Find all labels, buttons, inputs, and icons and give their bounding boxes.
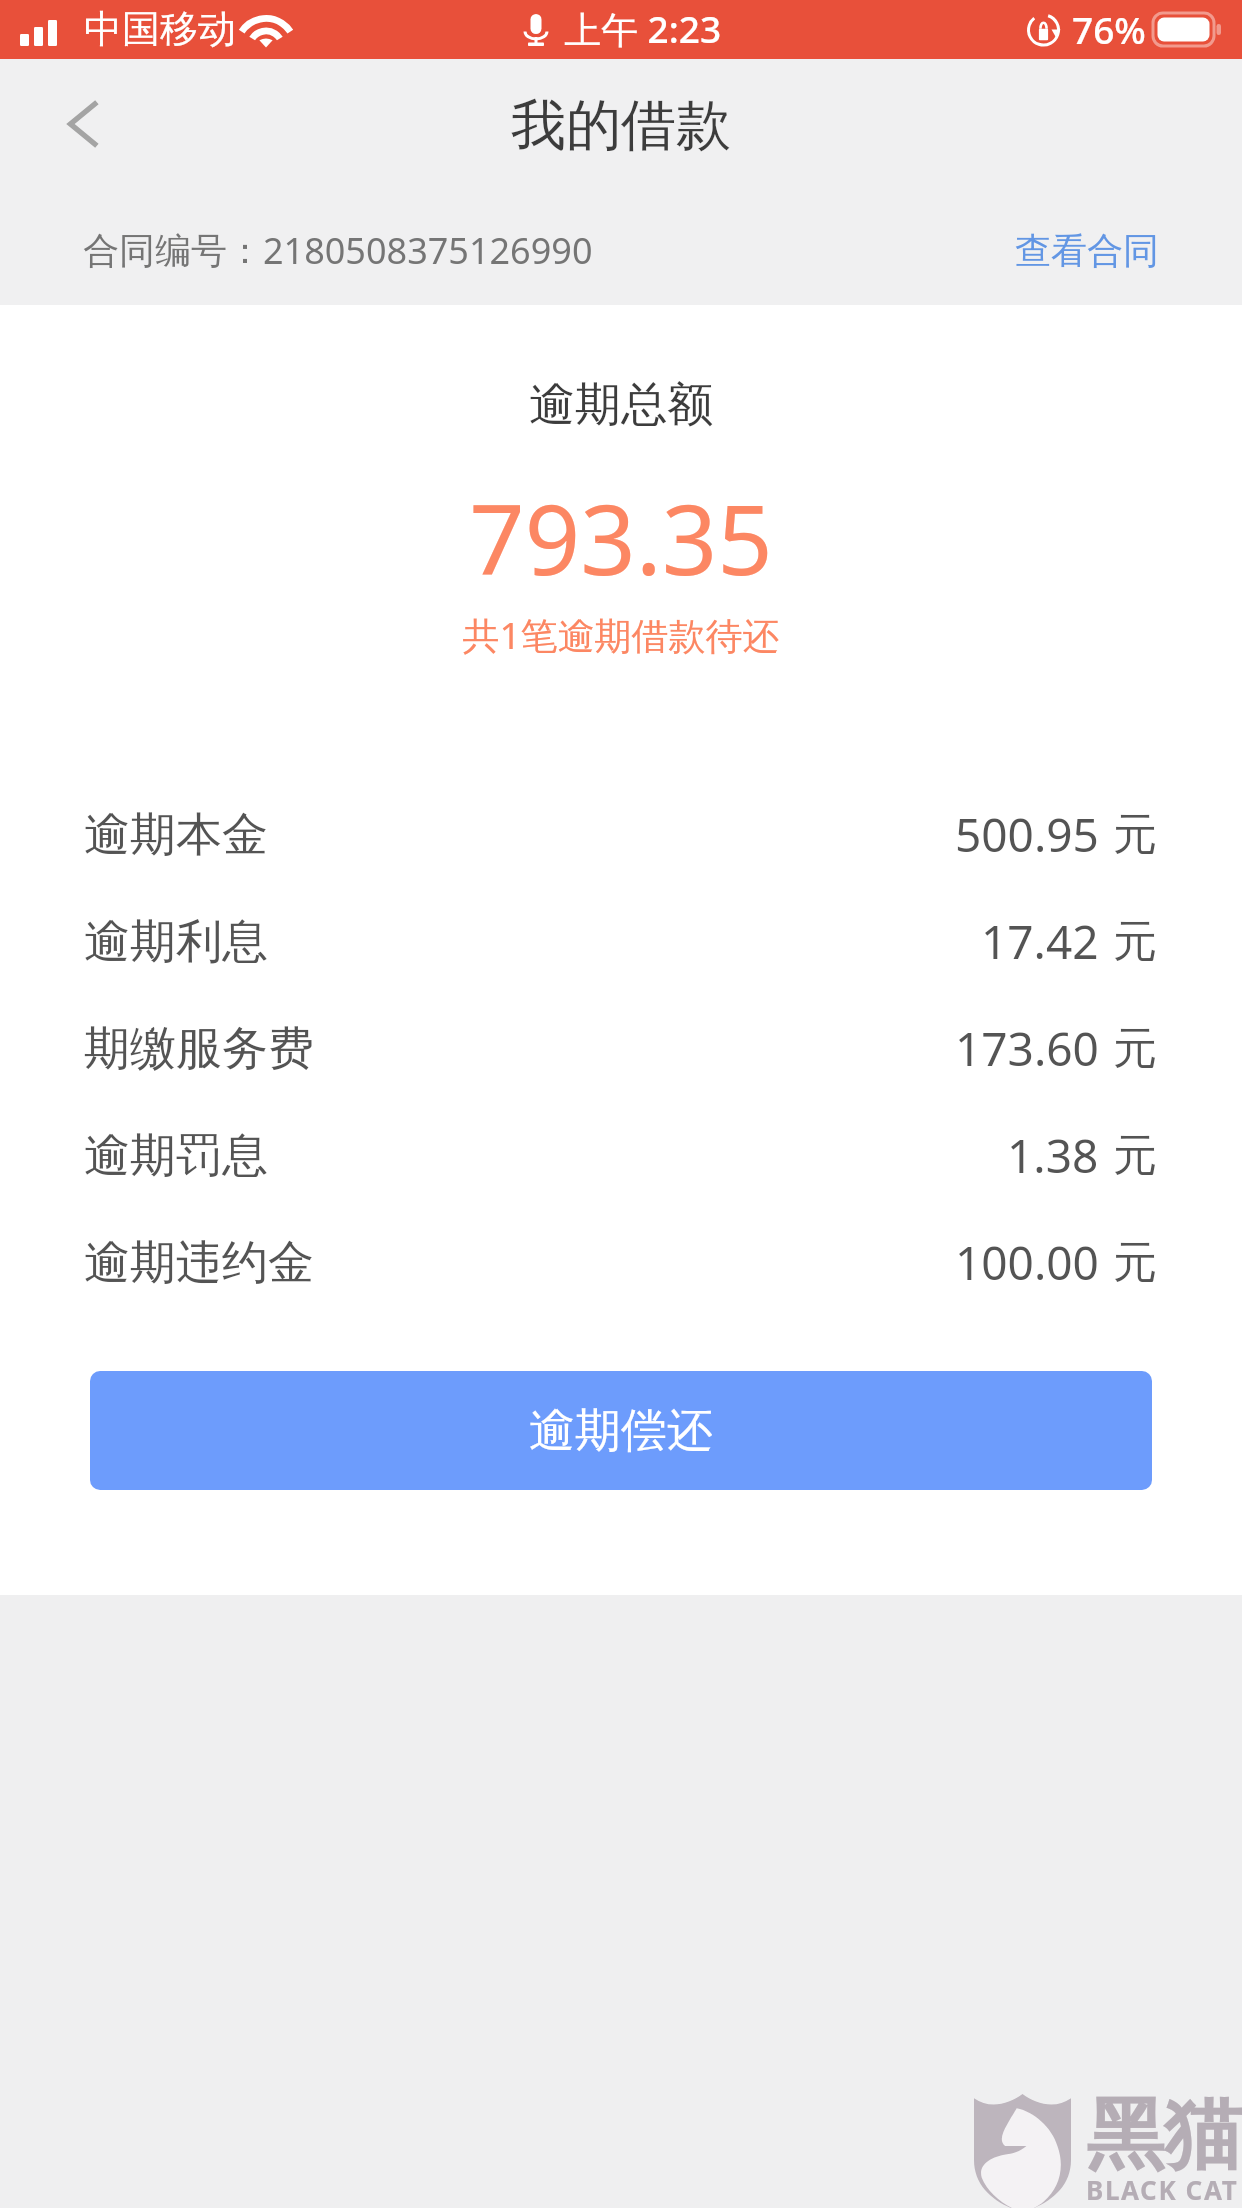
staticText: 元 (1113, 807, 1157, 862)
staticText: 173.60 (955, 1017, 1099, 1080)
staticText: 我的借款 (511, 91, 731, 160)
staticText: 共1笔逾期借款待还 (0, 609, 1242, 660)
staticText: 黑猫 (1086, 2086, 1242, 2184)
staticText: 逾期偿还 (529, 1402, 713, 1460)
staticText: 17.42 (981, 910, 1099, 973)
staticText: 元 (1113, 914, 1157, 969)
button[interactable]: Back (20, 59, 146, 188)
staticText: 上午 2:23 (564, 3, 722, 54)
staticText: 2180508375126990 (263, 226, 593, 275)
staticText: 中国移动 (84, 5, 236, 53)
staticText: 1.38 (1007, 1124, 1099, 1187)
staticText: 逾期罚息 (84, 1127, 268, 1185)
staticText: 逾期本金 (84, 806, 268, 864)
staticText: 逾期利息 (84, 913, 268, 971)
button[interactable]: 查看合同 (1015, 210, 1159, 291)
staticText: 元 (1113, 1235, 1157, 1290)
staticText: 元 (1113, 1021, 1157, 1076)
staticText: 500.95 (955, 803, 1099, 866)
staticText: BLACK CAT (1086, 2172, 1239, 2207)
staticText: 793.35 (0, 471, 1242, 603)
staticText: 逾期违约金 (84, 1234, 314, 1292)
staticText: 100.00 (955, 1231, 1099, 1294)
staticText: 期缴服务费 (84, 1020, 314, 1078)
button[interactable]: 逾期偿还 (90, 1371, 1152, 1490)
staticText: 逾期总额 (0, 376, 1242, 434)
staticText: 查看合同 (1015, 228, 1159, 273)
staticText: 76% (1072, 4, 1146, 54)
staticText: 合同编号： (83, 228, 263, 273)
staticText: 元 (1113, 1128, 1157, 1183)
